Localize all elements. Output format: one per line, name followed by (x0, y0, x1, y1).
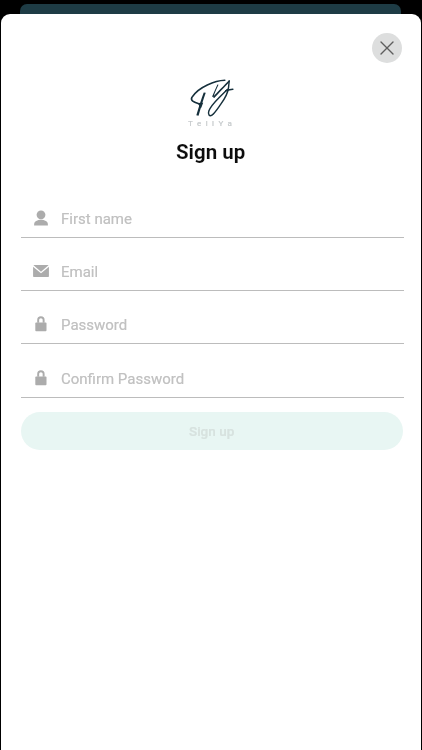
staticText: Sign up (189, 423, 235, 439)
staticText: TellYa (188, 119, 237, 128)
button[interactable]: Password (21, 310, 404, 344)
staticText: Sign up (176, 140, 246, 164)
button[interactable]: Confirm Password (21, 364, 404, 398)
staticText: First name (61, 210, 132, 228)
staticText: Password (61, 316, 128, 334)
button[interactable]: Close (372, 33, 402, 63)
button[interactable]: Sign up (21, 412, 403, 450)
staticText: Email (61, 263, 99, 281)
button[interactable]: First name (21, 204, 404, 238)
button[interactable]: Email (21, 257, 404, 291)
staticText: Confirm Password (61, 370, 185, 388)
